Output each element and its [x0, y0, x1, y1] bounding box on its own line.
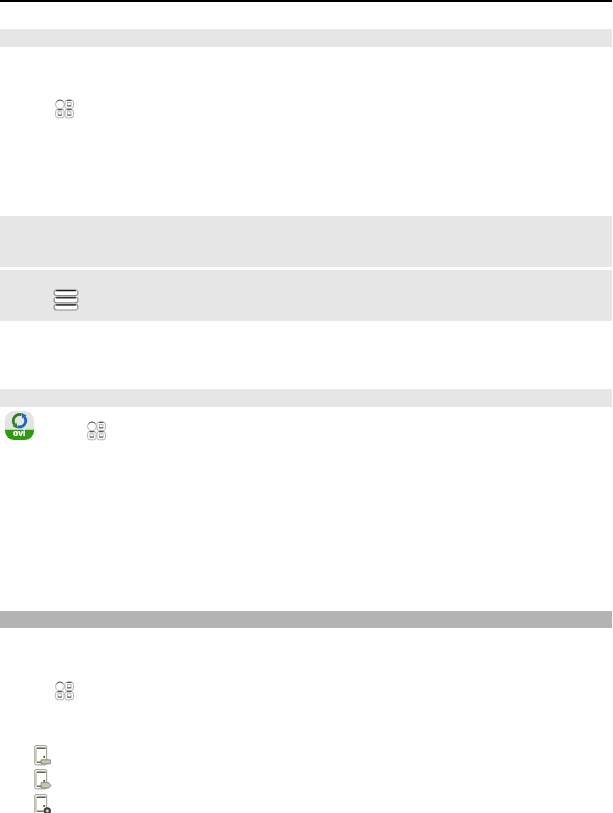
- staticText: ovi: [13, 427, 26, 439]
- button[interactable]: Store image: [87, 421, 106, 440]
- button[interactable]: Send to device: [34, 745, 51, 765]
- button[interactable]: Content image: [55, 681, 74, 700]
- button[interactable]: Menu: [54, 290, 78, 310]
- button[interactable]: Banner image: [55, 99, 74, 118]
- button[interactable]: Ovi: [5, 411, 34, 440]
- button[interactable]: Share with device: [34, 769, 51, 789]
- button[interactable]: Device settings: [34, 794, 51, 813]
